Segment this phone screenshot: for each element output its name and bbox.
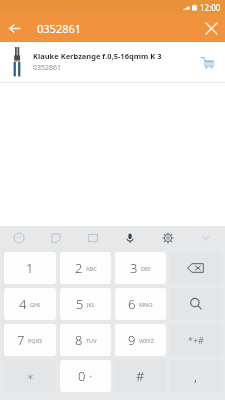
button[interactable]: 1 xyxy=(4,252,56,284)
staticText: GHI xyxy=(30,301,41,308)
button[interactable]: Emoji xyxy=(0,226,37,250)
staticText: DEF xyxy=(141,265,151,272)
staticText: TUV xyxy=(86,337,97,344)
staticText: 0 xyxy=(78,367,86,385)
staticText: JKL xyxy=(87,301,96,308)
button[interactable]: # xyxy=(115,360,166,392)
staticText: 1 xyxy=(26,259,34,277)
button[interactable]: 5 xyxy=(60,288,111,320)
button[interactable]: Search xyxy=(170,288,221,320)
button[interactable]: 6 xyxy=(115,288,166,320)
button[interactable]: 8 xyxy=(60,324,111,356)
button[interactable]: 7 xyxy=(4,324,56,356)
button[interactable]: Back xyxy=(0,14,28,42)
staticText: 7 xyxy=(17,331,25,349)
staticText: 12:00 xyxy=(200,2,221,13)
button[interactable]: GIF xyxy=(74,226,111,250)
staticText: WXYZ xyxy=(139,337,154,344)
staticText: 0352861 xyxy=(37,21,197,36)
staticText: 3 xyxy=(130,259,138,277)
button[interactable]: Clear xyxy=(197,14,225,42)
staticText: 9 xyxy=(128,331,136,349)
staticText: 0352861 xyxy=(33,63,62,73)
staticText: 4 xyxy=(19,295,27,313)
staticText: ABC xyxy=(86,265,97,272)
staticText: PQRS xyxy=(28,337,43,344)
staticText: , xyxy=(194,367,197,385)
staticText: + xyxy=(89,373,93,380)
button[interactable]: 9 xyxy=(115,324,166,356)
button[interactable]: 0 xyxy=(60,360,111,392)
button[interactable]: 4 xyxy=(4,288,56,320)
button[interactable]: Add to cart xyxy=(195,50,219,74)
button[interactable]: Backspace xyxy=(170,252,221,284)
staticText: MNO xyxy=(139,301,153,308)
staticText: 6 xyxy=(128,295,136,313)
button[interactable]: Settings xyxy=(149,226,187,250)
button[interactable]: Stickers xyxy=(37,226,74,250)
staticText: Klauke Kerbzange f.0,5-16qmm K 3 xyxy=(33,51,162,61)
button[interactable]: 2 xyxy=(60,252,111,284)
staticText: 5 xyxy=(76,295,84,313)
button[interactable]: Voice input xyxy=(111,226,149,250)
button[interactable]: ∗ xyxy=(4,360,56,392)
staticText: 2 xyxy=(75,259,83,277)
staticText: 8 xyxy=(75,331,83,349)
button[interactable]: , xyxy=(170,360,221,392)
button[interactable]: *+# xyxy=(170,324,221,356)
staticText: *+# xyxy=(188,334,204,346)
button[interactable]: Klauke Kerbzange f.0,5-16qmm K 3 xyxy=(0,42,225,83)
staticText: ∗ xyxy=(26,369,35,384)
button[interactable]: 3 xyxy=(115,252,166,284)
staticText: # xyxy=(136,367,145,385)
